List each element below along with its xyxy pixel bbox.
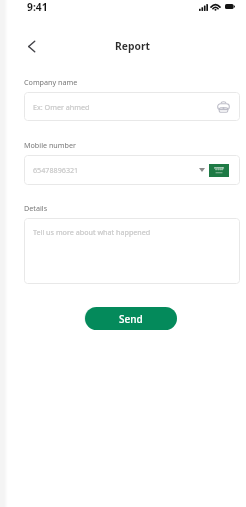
button[interactable]: Back <box>21 36 41 56</box>
button[interactable]: Tell us more about what happened <box>24 218 240 284</box>
other: Saudi Arabia <box>209 164 229 177</box>
staticText: Report <box>115 39 150 53</box>
button[interactable]: Choose country code <box>195 163 208 177</box>
button[interactable]: 65478896321 <box>24 155 240 185</box>
button[interactable]: Ex: Omer ahmed <box>24 92 240 121</box>
staticText: 65478896321 <box>33 165 79 175</box>
staticText: Mobile number <box>24 140 76 150</box>
staticText: Tell us more about what happened <box>33 227 151 237</box>
other: Company <box>217 100 230 114</box>
staticText: Company name <box>24 77 78 87</box>
staticText: Send <box>119 312 143 326</box>
staticText: 9:41 <box>27 0 48 14</box>
button[interactable]: Send <box>85 307 177 330</box>
staticText: Ex: Omer ahmed <box>33 102 90 112</box>
staticText: Details <box>24 203 48 213</box>
